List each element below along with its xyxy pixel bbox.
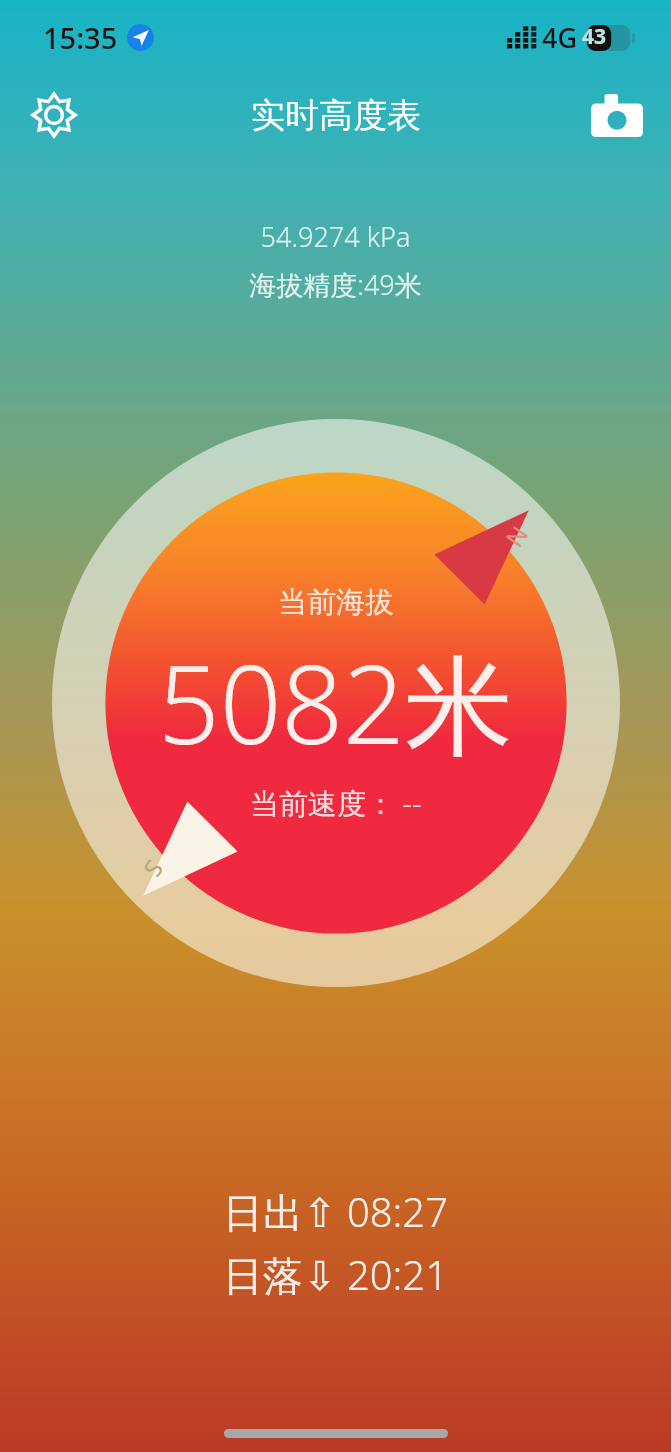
staticText: 日出⇧ 08:27	[223, 1184, 449, 1239]
button[interactable]: Current altitude 5082 meters	[52, 419, 620, 987]
staticText: S	[136, 854, 172, 885]
staticText: 15:35	[43, 18, 118, 57]
button[interactable]: Settings	[22, 83, 86, 147]
staticText: 日落⇩ 20:21	[223, 1247, 449, 1302]
staticText: 海拔精度:49米	[0, 266, 671, 303]
staticText: 43	[582, 22, 607, 51]
staticText: 4G	[542, 19, 578, 56]
staticText: 实时高度表	[251, 94, 421, 137]
staticText: N	[498, 520, 536, 555]
staticText: 5082米	[158, 629, 513, 777]
staticText: 54.9274 kPa	[0, 218, 671, 255]
staticText: 当前速度： --	[250, 783, 422, 823]
staticText: 当前海拔	[278, 584, 394, 621]
button[interactable]: Camera	[585, 83, 649, 147]
